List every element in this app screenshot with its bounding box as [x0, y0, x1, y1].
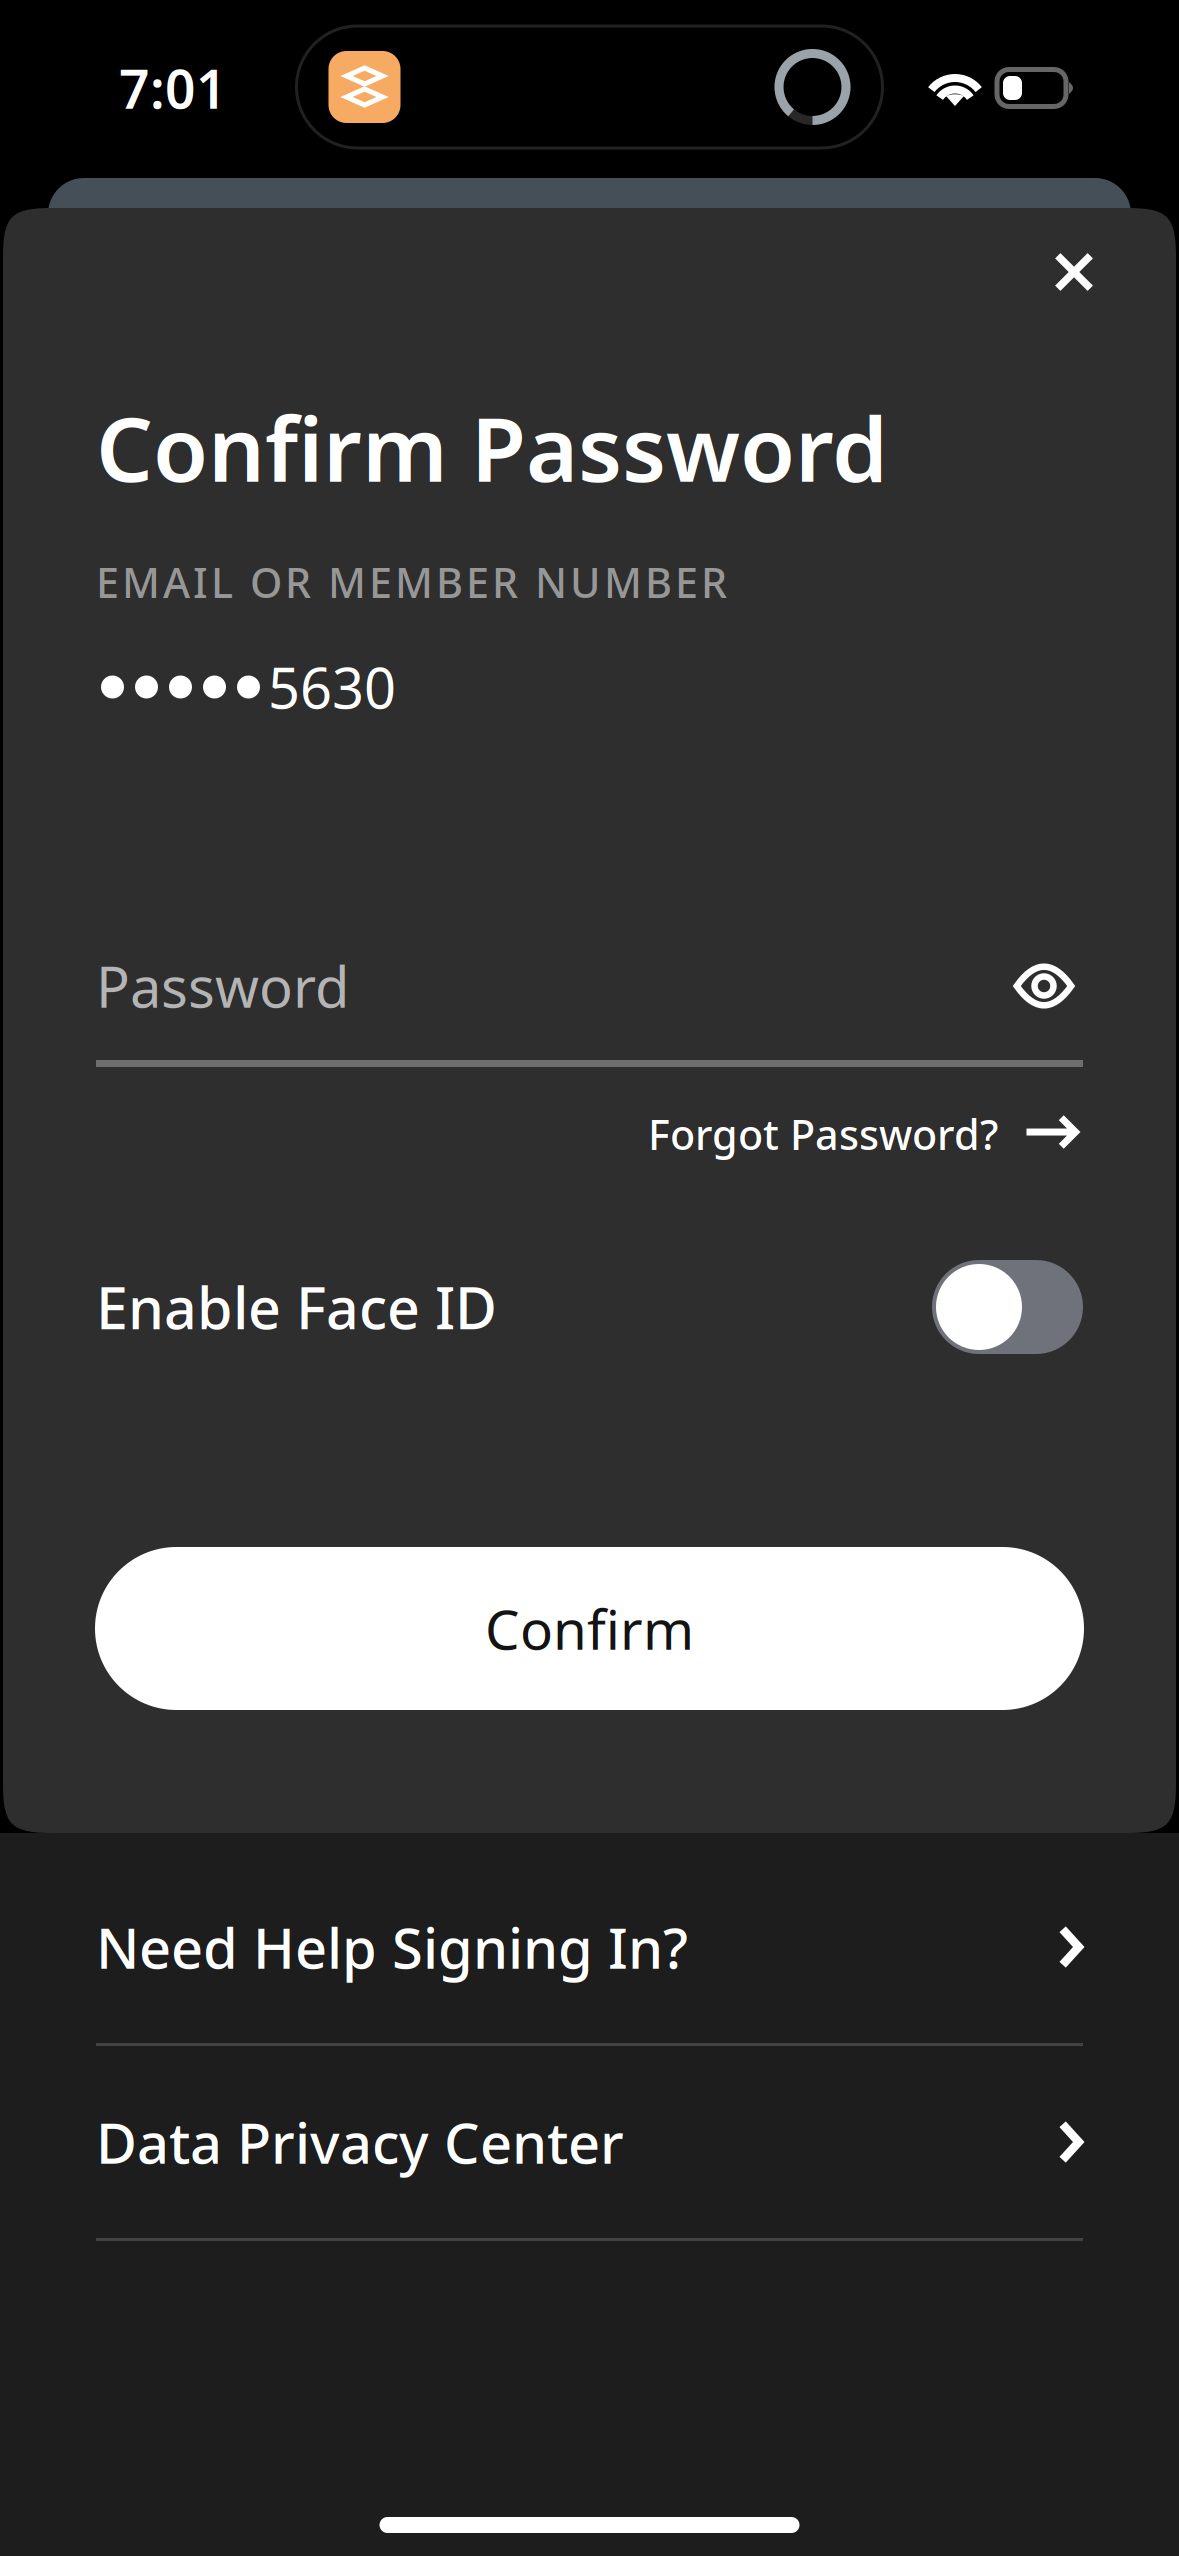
staticText: 7:01 [119, 53, 227, 123]
button[interactable]: Forgot Password? [644, 1093, 1083, 1175]
staticText: Enable Face ID [96, 1269, 497, 1345]
button[interactable]: Enable Face ID [932, 1260, 1083, 1354]
button[interactable]: Confirm [95, 1547, 1084, 1710]
button[interactable]: Show password [1005, 946, 1083, 1026]
staticText: Forgot Password? [648, 1107, 998, 1161]
staticText: Need Help Signing In? [96, 1910, 688, 1984]
staticText: Confirm [485, 1592, 694, 1665]
staticText: EMAIL OR MEMBER NUMBER [96, 555, 727, 609]
staticText: Password [96, 949, 349, 1023]
staticText: Data Privacy Center [96, 2105, 624, 2179]
button[interactable]: Data Privacy Center [0, 2046, 1179, 2241]
button[interactable]: Need Help Signing In? [0, 1851, 1179, 2046]
staticText: 5630 [268, 650, 396, 724]
button[interactable]: Close [1010, 208, 1138, 336]
staticText: Confirm Password [96, 388, 888, 506]
